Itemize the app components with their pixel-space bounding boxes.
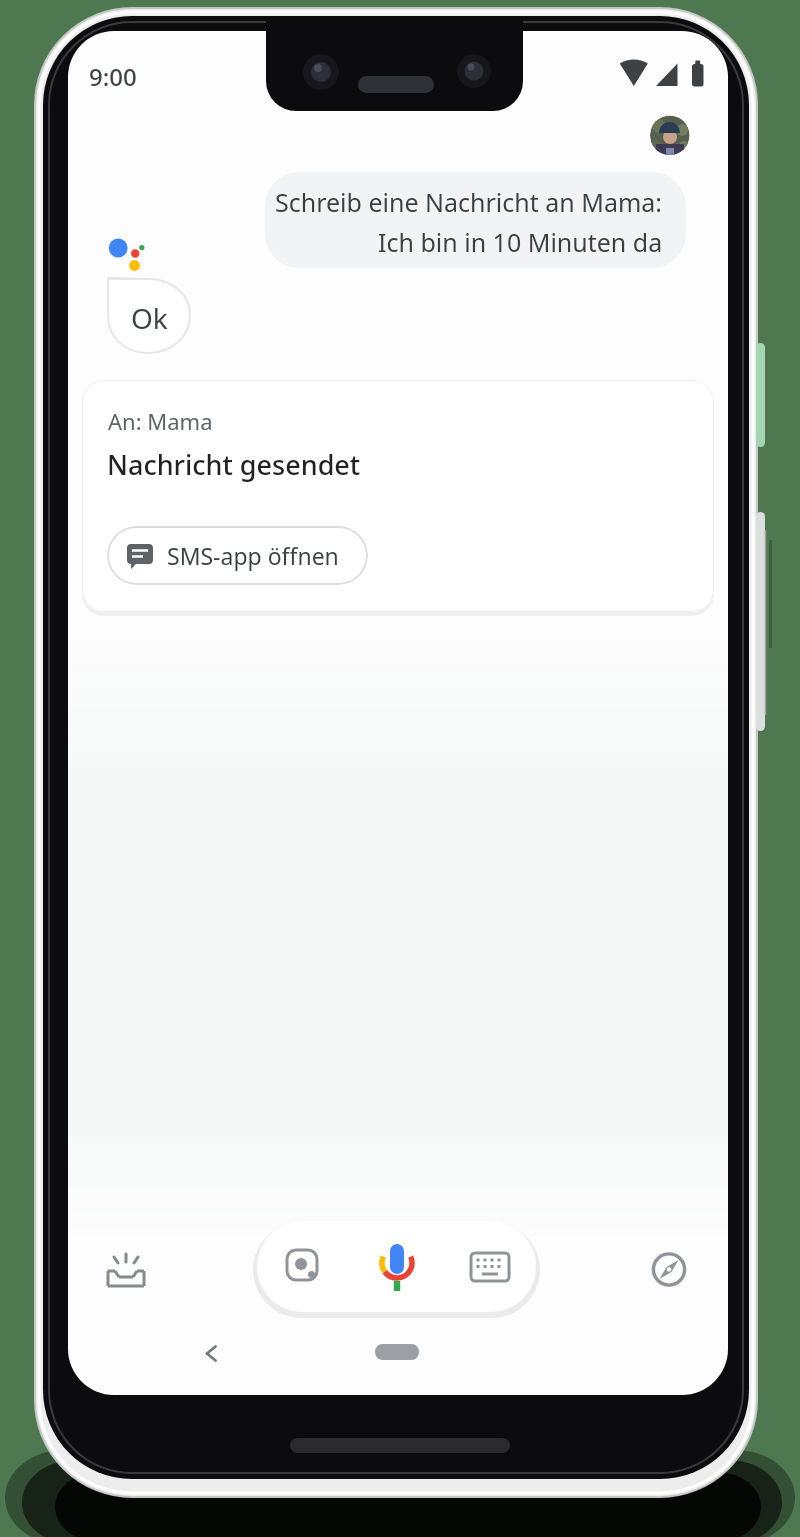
button[interactable] (375, 1344, 419, 1360)
button[interactable] (194, 1336, 230, 1372)
button[interactable] (650, 118, 687, 155)
staticText: An: Mama (108, 406, 213, 436)
button[interactable] (100, 1246, 152, 1298)
button[interactable]: SMS-app öffnen (107, 526, 368, 585)
staticText: Ich bin in 10 Minuten da (378, 225, 663, 259)
button[interactable] (350, 1221, 443, 1312)
staticText: Nachricht gesendet (107, 446, 361, 483)
staticText: SMS-app öffnen (167, 540, 339, 571)
staticText: Schreib eine Nachricht an Mama: (275, 185, 663, 219)
button[interactable] (443, 1221, 536, 1312)
button[interactable] (257, 1221, 350, 1312)
button[interactable] (645, 1245, 693, 1293)
staticText: Ok (131, 299, 168, 337)
staticText: 9:00 (89, 60, 137, 93)
